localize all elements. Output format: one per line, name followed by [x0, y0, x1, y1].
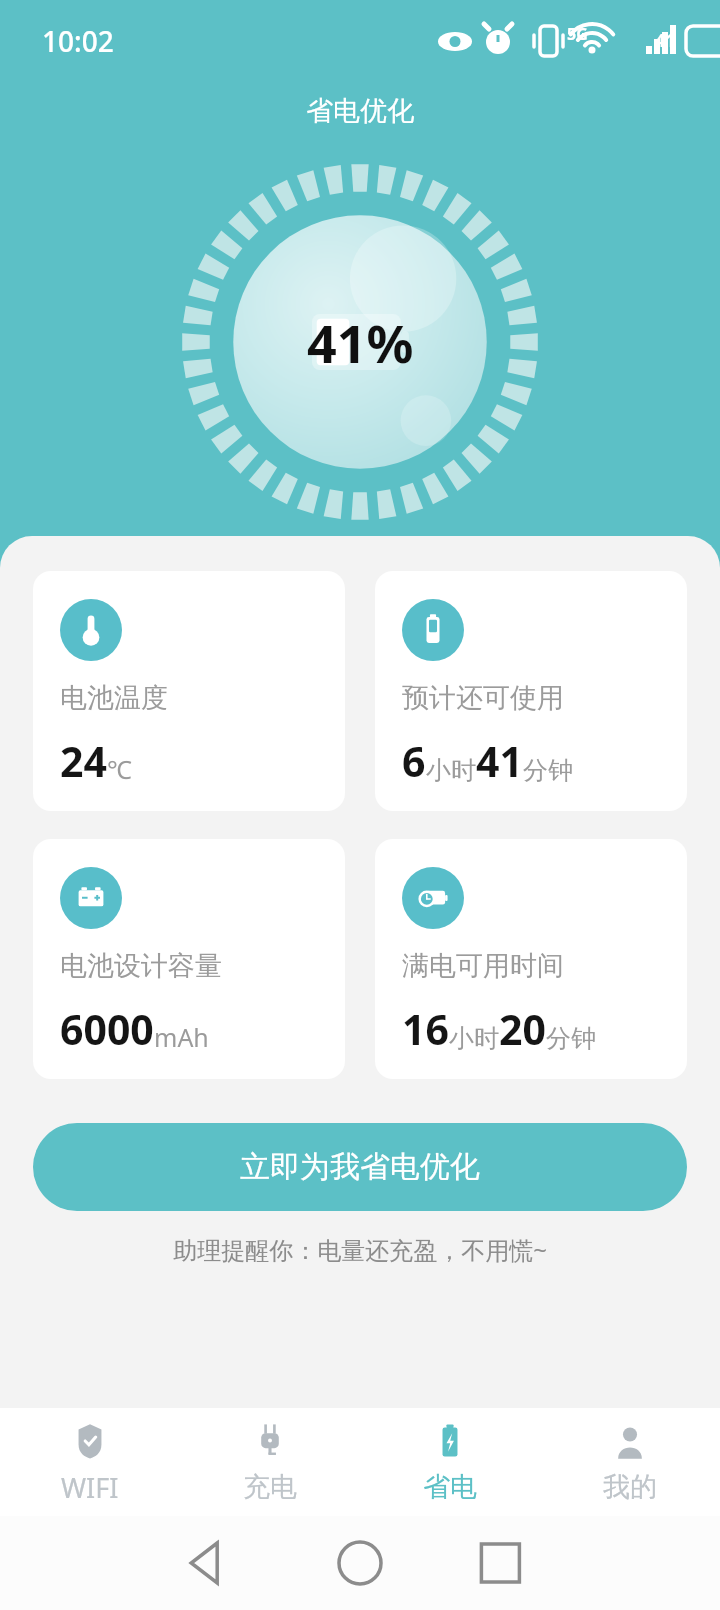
- staticText: 24: [60, 733, 107, 789]
- staticText: 电池设计容量: [60, 949, 222, 983]
- staticText: 10:02: [42, 22, 114, 60]
- button[interactable]: 满电可用时间: [375, 839, 687, 1079]
- staticText: ℃: [107, 752, 132, 786]
- staticText: 充电: [243, 1470, 297, 1504]
- staticText: 省电优化: [0, 94, 720, 128]
- button[interactable]: 省电: [360, 1408, 540, 1516]
- staticText: 分钟: [523, 755, 573, 786]
- button[interactable]: 电池温度: [33, 571, 345, 811]
- button[interactable]: 我的: [540, 1408, 720, 1516]
- staticText: 小时: [449, 1023, 499, 1054]
- staticText: 小时: [426, 755, 476, 786]
- staticText: 41: [476, 733, 523, 789]
- button[interactable]: 立即为我省电优化: [33, 1123, 687, 1211]
- staticText: 立即为我省电优化: [240, 1148, 480, 1186]
- staticText: 分钟: [546, 1023, 596, 1054]
- staticText: 41%: [307, 307, 414, 378]
- staticText: 41: [655, 28, 676, 53]
- button[interactable]: 电池设计容量: [33, 839, 345, 1079]
- staticText: WIFI: [61, 1469, 119, 1506]
- button[interactable]: 预计还可使用: [375, 571, 687, 811]
- staticText: 16: [402, 1001, 449, 1057]
- staticText: 我的: [603, 1470, 657, 1504]
- staticText: 20: [499, 1001, 546, 1057]
- button[interactable]: 充电: [180, 1408, 360, 1516]
- staticText: mAh: [154, 1020, 209, 1054]
- staticText: 6: [402, 733, 426, 789]
- staticText: 满电可用时间: [402, 949, 564, 983]
- staticText: 电池温度: [60, 681, 168, 715]
- staticText: 助理提醒你：电量还充盈，不用慌~: [0, 1233, 720, 1266]
- staticText: 预计还可使用: [402, 681, 564, 715]
- button[interactable]: WIFI: [0, 1408, 180, 1516]
- staticText: 5G: [567, 23, 588, 45]
- staticText: 省电: [423, 1470, 477, 1504]
- staticText: 6000: [60, 1001, 154, 1057]
